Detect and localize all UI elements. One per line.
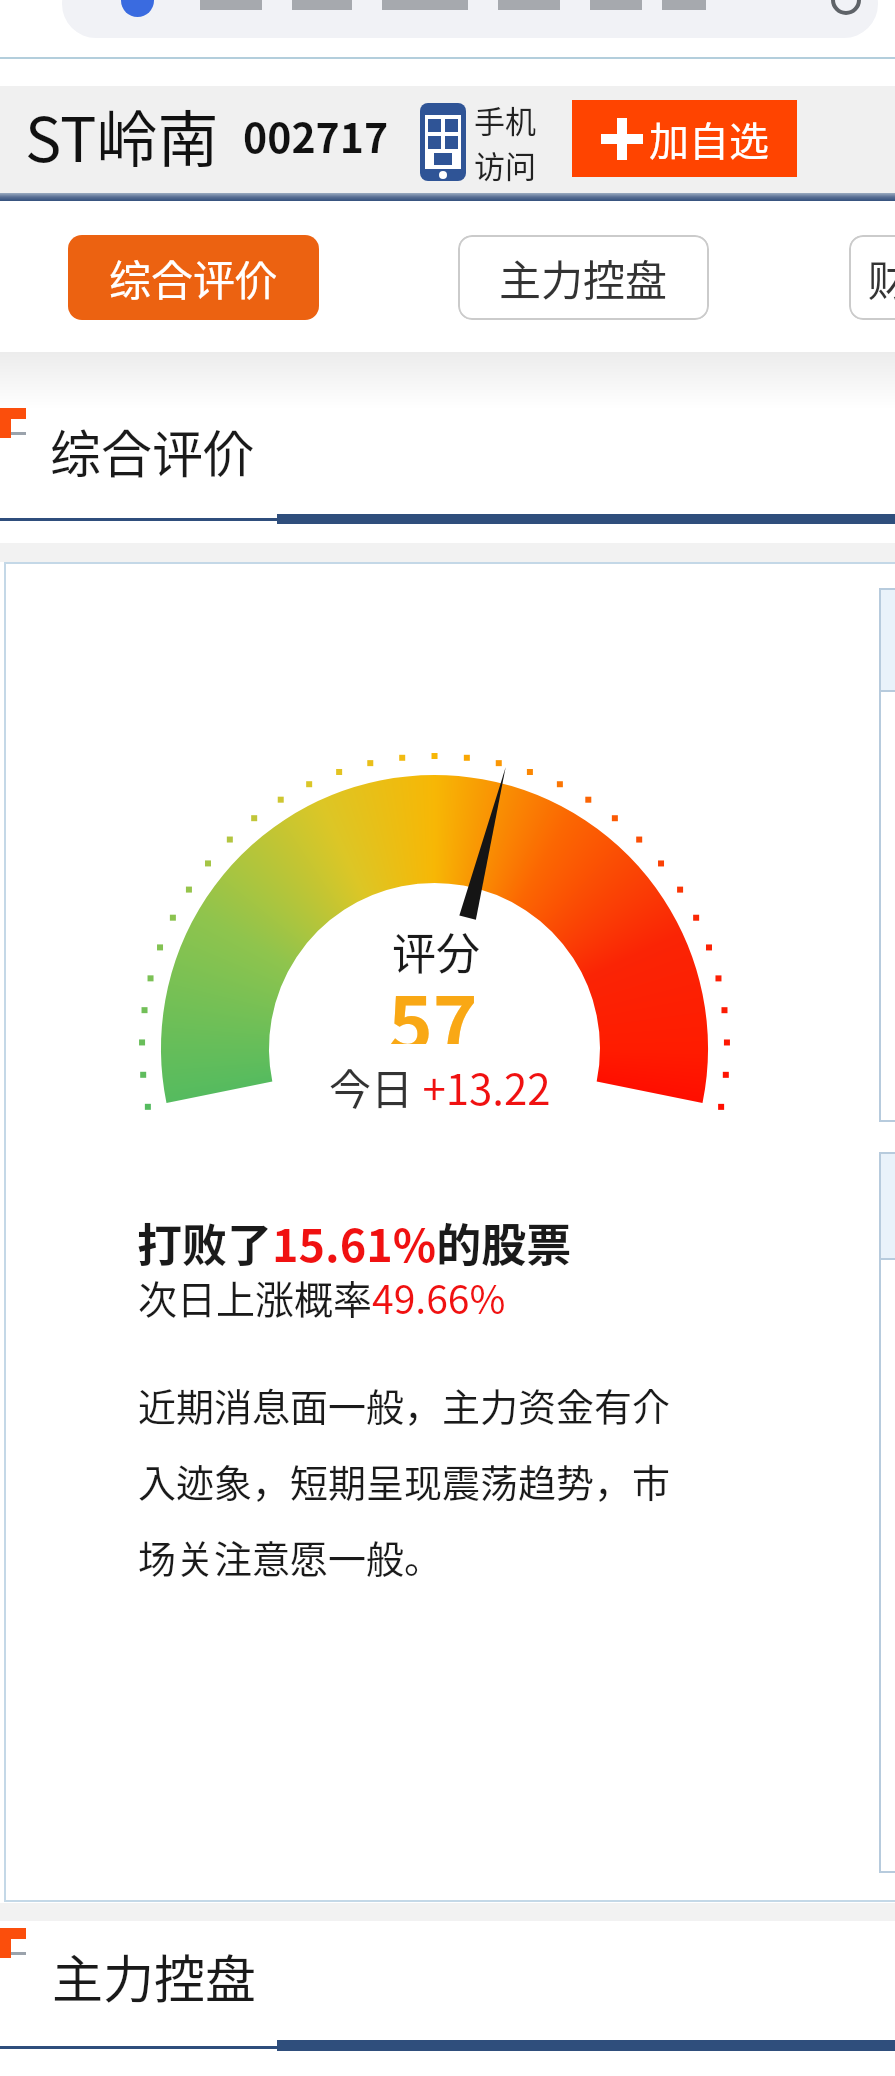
staticText: 财务 [849,247,895,308]
staticText: 次日上涨概率49.66% [138,1269,506,1325]
button[interactable]: 加自选 [572,100,797,177]
button[interactable]: 财务 [849,235,895,320]
staticText: 002717 [243,105,389,164]
button[interactable]: 主力控盘 [458,235,709,320]
staticText: 57 [388,964,478,1044]
button[interactable] [62,0,878,38]
staticText: 主力控盘 [52,1939,257,2013]
staticText: 综合评价 [109,247,278,308]
staticText: 综合评价 [50,414,255,488]
button[interactable] [420,103,466,181]
staticText: 评分 [392,919,480,977]
staticText: 手机 [474,97,536,142]
button[interactable]: 综合评价 [68,235,319,320]
staticText: 近期消息面一般，主力资金有介 入迹象，短期呈现震荡趋势，市 场关注意愿一般。 [138,1377,671,1584]
staticText: 主力控盘 [499,247,668,308]
button[interactable]: 评分 [4,562,895,1902]
staticText: 加自选 [649,110,769,168]
staticText: 访问 [474,142,536,187]
staticText: ST岭南 [25,91,219,179]
staticText: 今日 +13.22 [329,1056,551,1116]
staticText: 打败了15.61%的股票 [137,1210,572,1275]
